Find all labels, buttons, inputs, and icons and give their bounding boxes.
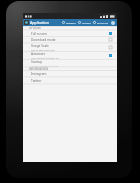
staticText: Instagram	[31, 72, 47, 76]
button[interactable]: SETTINGS	[92, 21, 110, 24]
staticText: Download mode	[31, 38, 56, 42]
staticText: REFRESH	[66, 21, 76, 24]
button[interactable]: Account	[110, 20, 116, 26]
button[interactable]: Startup	[23, 59, 117, 67]
button[interactable]: Autostart	[23, 51, 117, 59]
staticText: Application	[30, 20, 49, 25]
button[interactable]: Full screen	[23, 30, 117, 37]
button[interactable]: REFRESH	[61, 21, 77, 24]
button[interactable]: SEARCH	[77, 21, 92, 24]
button[interactable]: Twitter	[23, 77, 117, 84]
staticText: Size of tiles used tiles	[31, 48, 55, 51]
staticText: SETTINGS	[97, 21, 109, 24]
staticText: Start service at power on	[31, 56, 59, 59]
button[interactable]: Usage Scale	[23, 43, 117, 52]
staticText: Choose categories cards	[31, 64, 59, 67]
staticText: Twitter	[31, 79, 42, 83]
button[interactable]: Instagram	[23, 70, 117, 77]
button[interactable]: App icon	[24, 20, 29, 25]
staticText: SEARCH	[82, 21, 91, 24]
button[interactable]: Download mode	[23, 36, 117, 43]
staticText: Full screen	[31, 32, 47, 36]
staticText: OPTIONS	[29, 26, 41, 30]
staticText: Startup	[31, 60, 43, 64]
staticText: Autostart	[31, 52, 46, 56]
staticText: Usage Scale	[31, 44, 49, 48]
staticText: INFORMATION	[29, 67, 49, 71]
